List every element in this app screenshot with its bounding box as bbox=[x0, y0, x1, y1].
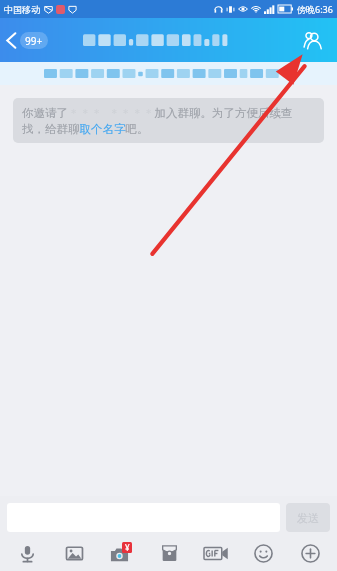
button[interactable]: Back, 99+ unread bbox=[0, 25, 56, 56]
button[interactable]: 发送 bbox=[286, 503, 330, 532]
staticText: 你邀请了＊＊＊ ＊＊＊＊加入群聊。为了方便后续查找，给群聊取个名字吧。 bbox=[22, 105, 315, 136]
button[interactable]: Group announcement bbox=[0, 62, 337, 85]
button[interactable]: Voice message bbox=[5, 538, 49, 568]
button[interactable]: Group members bbox=[295, 23, 329, 57]
button[interactable]: Photo bbox=[52, 538, 96, 568]
button[interactable]: Red packet bbox=[147, 538, 191, 568]
button[interactable]: GIF bbox=[194, 538, 238, 568]
staticText: 99+ bbox=[25, 34, 43, 48]
button[interactable]: More bbox=[288, 538, 332, 568]
staticText: 傍晚6:36 bbox=[297, 3, 333, 15]
button[interactable]: Emoji bbox=[241, 538, 285, 568]
button[interactable]: Camera bbox=[99, 538, 143, 568]
staticText: 中国移动 bbox=[4, 4, 40, 15]
button[interactable]: 你邀请了＊＊＊ ＊＊＊＊加入群聊。为了方便后续查找，给群聊取个名字吧。 bbox=[13, 98, 324, 143]
staticText: ¥ bbox=[125, 542, 130, 553]
staticText: 发送 bbox=[297, 511, 319, 525]
